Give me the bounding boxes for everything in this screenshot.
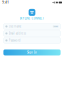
staticText: Password [9, 39, 21, 42]
button[interactable]: Email address [3, 30, 61, 36]
staticText: 9:41 [2, 1, 9, 4]
staticText: SKYLINE CONNECT [19, 17, 44, 20]
button[interactable]: Sign In [3, 49, 61, 55]
button[interactable]: Password [3, 37, 61, 43]
button[interactable]: Username [3, 23, 61, 29]
staticText: SEND [54, 26, 58, 27]
staticText: Email address [9, 32, 26, 35]
staticText: Username [9, 25, 22, 28]
staticText: Sign In [27, 51, 37, 54]
